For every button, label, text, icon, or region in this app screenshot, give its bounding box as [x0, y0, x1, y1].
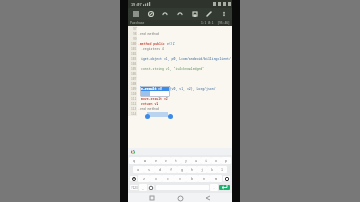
button[interactable]: k [207, 166, 217, 173]
staticText: 101 [131, 47, 137, 51]
button[interactable]: c [162, 175, 174, 182]
button[interactable]: Home [176, 194, 184, 202]
button[interactable]: ?123 [130, 185, 138, 190]
staticText: h [191, 167, 194, 172]
staticText: f [170, 167, 173, 172]
staticText: invoke-virtual {v0, v1, v2}, Lorg/json/J… [141, 87, 232, 91]
staticText: x [155, 176, 158, 181]
button[interactable]: o [211, 157, 221, 164]
button[interactable]: 113 [128, 106, 232, 111]
staticText: g [181, 167, 184, 172]
button[interactable]: Edit [204, 9, 214, 19]
button[interactable]: Run [146, 9, 156, 19]
staticText: q [133, 158, 136, 163]
button[interactable]: Backspace [223, 176, 230, 181]
button[interactable]: 103 [128, 56, 232, 61]
button[interactable]: 100 [128, 41, 232, 46]
button[interactable]: v [174, 175, 186, 182]
button[interactable]: Google [130, 149, 135, 154]
button[interactable]: 102 [128, 51, 232, 56]
button[interactable]: p [221, 157, 231, 164]
staticText: 107 [131, 77, 137, 81]
staticText: e-result [141, 87, 157, 91]
staticText: 112 [131, 102, 137, 106]
button[interactable]: n [198, 175, 210, 182]
button[interactable]: s [144, 166, 155, 173]
staticText: 103 [131, 57, 137, 61]
button[interactable]: b [186, 175, 198, 182]
staticText: . [213, 185, 216, 190]
button[interactable]: i [201, 157, 211, 164]
staticText: w [144, 158, 147, 163]
button[interactable]: 104 [128, 61, 232, 66]
button[interactable]: h [187, 166, 197, 173]
button[interactable]: j [197, 166, 207, 173]
staticText: v [179, 176, 182, 181]
staticText: const-string v1, "isAcknowledged" [141, 67, 205, 71]
staticText: .end method [138, 32, 160, 36]
staticText: 108 [131, 82, 137, 86]
staticText: d [159, 167, 162, 172]
button[interactable]: e-result [140, 86, 170, 97]
button[interactable]: a [133, 166, 144, 173]
staticText: c [167, 176, 170, 181]
button[interactable]: 101 [128, 46, 232, 51]
staticText: .registers 4 [141, 47, 164, 51]
staticText: 97 [133, 27, 137, 31]
button[interactable]: y [181, 157, 191, 164]
staticText: return v1 [141, 102, 159, 106]
staticText: 98 [133, 32, 137, 36]
button[interactable]: 112 [128, 101, 232, 106]
button[interactable]: w [140, 157, 151, 164]
staticText: e()Z [167, 42, 175, 46]
staticText: l [221, 167, 224, 172]
staticText: 19:07 [131, 2, 142, 7]
button[interactable]: 109 [128, 86, 232, 91]
button[interactable]: m [210, 175, 222, 182]
button[interactable]: Back [204, 194, 212, 202]
button[interactable]: z [138, 175, 150, 182]
button[interactable]: 105 [128, 66, 232, 71]
button[interactable]: , [139, 184, 147, 191]
staticText: 111 [131, 97, 137, 101]
button[interactable]: Recents [148, 194, 156, 202]
staticText: .method public [138, 42, 167, 46]
button[interactable]: 99 [128, 36, 232, 41]
button[interactable]: 111 [128, 96, 232, 101]
button[interactable]: Menu [131, 9, 141, 19]
button[interactable]: Save [190, 9, 200, 19]
staticText: s [148, 167, 151, 172]
button[interactable]: 108 [128, 81, 232, 86]
button[interactable]: More [219, 9, 229, 19]
button[interactable]: Emoji [148, 185, 154, 190]
button[interactable]: l [217, 166, 227, 173]
button[interactable]: e [151, 157, 161, 164]
button[interactable]: r [161, 157, 171, 164]
button[interactable]: f [166, 166, 177, 173]
button[interactable]: d [155, 166, 166, 173]
button[interactable]: t [171, 157, 181, 164]
staticText: 1:1 0:1 [95:46] [201, 21, 230, 25]
staticText: e [155, 158, 158, 163]
staticText: 113 [131, 107, 137, 111]
button[interactable]: Undo [160, 9, 170, 19]
staticText: n [203, 176, 206, 181]
button[interactable]: Enter [219, 185, 230, 190]
button[interactable]: 97 [128, 26, 232, 31]
button[interactable]: u [191, 157, 201, 164]
button[interactable]: x [150, 175, 162, 182]
button[interactable]: 114 [128, 111, 232, 116]
staticText: 109 [131, 87, 137, 91]
button[interactable]: 107 [128, 76, 232, 81]
button[interactable]: 98 [128, 31, 232, 36]
button[interactable]: 110 [128, 91, 232, 96]
button[interactable]: g [177, 166, 187, 173]
staticText: u [195, 158, 198, 163]
button[interactable]: Shift [130, 176, 137, 181]
staticText: m [215, 176, 218, 181]
button[interactable]: Redo [175, 9, 185, 19]
button[interactable]: q [129, 157, 140, 164]
button[interactable]: 106 [128, 71, 232, 76]
